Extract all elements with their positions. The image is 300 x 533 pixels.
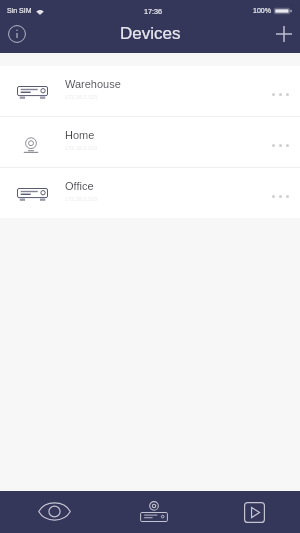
button[interactable]: Devices: [100, 491, 200, 533]
button[interactable]: Playback: [200, 491, 300, 533]
staticText: Sin SIM: [7, 7, 32, 15]
staticText: 17:36: [144, 7, 162, 15]
button[interactable]: Office: [0, 168, 300, 218]
button[interactable]: Live view: [0, 491, 100, 533]
staticText: Warehouse: [65, 78, 121, 90]
button[interactable]: More options: [255, 66, 300, 116]
button[interactable]: Warehouse: [0, 66, 300, 116]
button[interactable]: Add device: [271, 21, 297, 47]
staticText: Devices: [120, 24, 181, 43]
button[interactable]: Info: [4, 21, 30, 47]
staticText: 172.16.2.123: [65, 145, 98, 151]
staticText: 172.16.2.123: [65, 196, 98, 202]
button[interactable]: More options: [255, 117, 300, 167]
staticText: 172.16.2.123: [65, 94, 98, 100]
staticText: Home: [65, 129, 95, 141]
staticText: Office: [65, 180, 94, 192]
staticText: 100%: [253, 7, 271, 15]
button[interactable]: More options: [255, 168, 300, 218]
button[interactable]: Home: [0, 117, 300, 167]
